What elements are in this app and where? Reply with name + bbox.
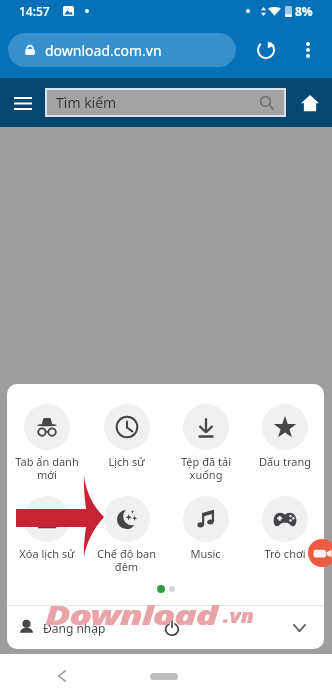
- staticText: Music: [190, 546, 221, 561]
- button[interactable]: Camera: [308, 539, 332, 567]
- button[interactable]: Power: [158, 614, 186, 642]
- button[interactable]: Tìm kiếm: [47, 90, 284, 115]
- staticText: Xóa lịch sử: [19, 546, 75, 561]
- staticText: Tệp đã tải xuống: [181, 454, 231, 482]
- staticText: Tab ẩn danh mới: [15, 454, 79, 482]
- button[interactable]: Tab ẩn danh mới: [7, 404, 87, 482]
- staticText: Lịch sử: [108, 454, 145, 469]
- button[interactable]: Trò chơi: [245, 496, 324, 561]
- staticText: Trò chơi: [264, 546, 306, 561]
- button[interactable]: Back: [49, 663, 75, 689]
- button[interactable]: Menu: [9, 89, 37, 117]
- button[interactable]: Xóa lịch sử: [7, 496, 87, 561]
- staticText: Đăng nhập: [43, 620, 106, 636]
- button[interactable]: Collapse: [284, 613, 314, 643]
- button[interactable]: download.com.vn: [8, 33, 236, 67]
- button[interactable]: Music: [166, 496, 245, 561]
- staticText: Dấu trang: [259, 454, 311, 469]
- button[interactable]: Lịch sử: [87, 404, 166, 469]
- button[interactable]: Đăng nhập: [18, 619, 106, 636]
- staticText: Chế độ ban đêm: [97, 546, 156, 574]
- staticText: 8%: [295, 3, 313, 19]
- staticText: .vn: [223, 602, 254, 629]
- button[interactable]: Reload: [250, 34, 282, 66]
- button[interactable]: Home: [150, 673, 178, 680]
- staticText: 14:57: [19, 3, 50, 19]
- staticText: Tìm kiếm: [56, 93, 117, 112]
- button[interactable]: More options: [294, 36, 322, 64]
- button[interactable]: Home: [295, 88, 325, 118]
- staticText: Download: [45, 596, 217, 633]
- button[interactable]: Tệp đã tải xuống: [166, 404, 245, 482]
- staticText: download.com.vn: [45, 41, 162, 60]
- button[interactable]: Dấu trang: [245, 404, 324, 469]
- button[interactable]: Chế độ ban đêm: [87, 496, 166, 574]
